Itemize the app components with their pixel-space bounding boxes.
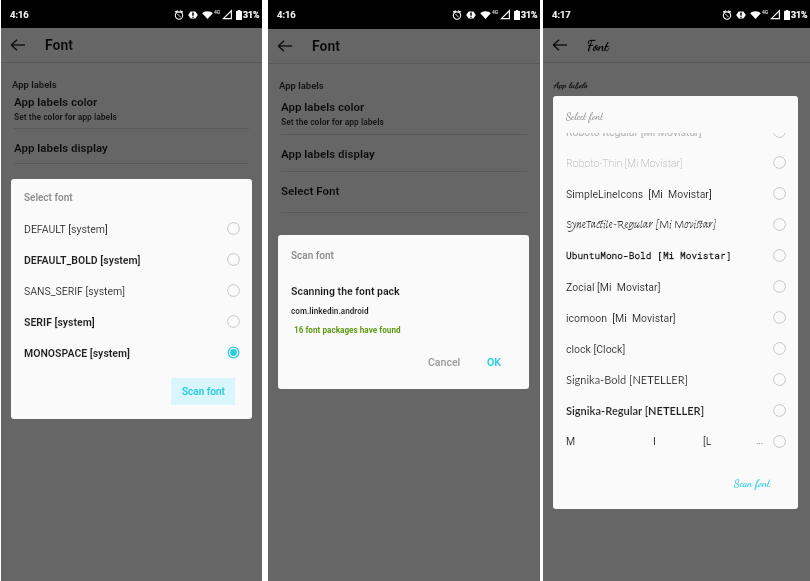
staticText: Set the color for app labels — [281, 117, 384, 127]
staticText: Scanning the font pack — [291, 285, 400, 297]
button[interactable]: SERIF [system] — [11, 306, 252, 337]
button[interactable]: App labels color — [543, 95, 810, 133]
button[interactable]: App labels color — [268, 100, 540, 138]
staticText: M — [566, 435, 576, 447]
staticText: App labels — [279, 80, 324, 91]
staticText: DEFAULT_BOLD [system] — [24, 254, 141, 266]
button[interactable]: DEFAULT [system] — [11, 213, 252, 244]
staticText: Zocial [Mi Movistar] — [566, 281, 661, 293]
staticText: App labels color — [14, 95, 98, 108]
staticText: SERIF [system] — [24, 316, 95, 328]
staticText: com.linkedin.android — [291, 306, 369, 316]
staticText: Select font — [24, 192, 73, 204]
staticText: 31% — [791, 10, 808, 20]
staticText: Select font — [566, 111, 604, 123]
button[interactable]: SimpleLineIcons [Mi Movistar] — [553, 178, 798, 209]
staticText: MONOSPACE [system] — [24, 347, 131, 359]
button[interactable]: App labels display — [1, 129, 262, 166]
button[interactable]: clock [Clock] — [553, 333, 798, 364]
staticText: App labels display — [14, 141, 108, 154]
staticText: OK — [487, 356, 501, 368]
button[interactable]: icomoon [Mi Movistar] — [553, 302, 798, 333]
staticText: Signika-Regular [NETELLER] — [566, 404, 705, 417]
staticText: UbuntuMono-Bold [Mi Movistar] — [566, 249, 732, 262]
staticText: Signika-Bold [NETELLER] — [566, 373, 688, 386]
button[interactable]: M — [553, 426, 798, 456]
staticText: 31% — [243, 10, 260, 20]
button[interactable]: DEFAULT_BOLD [system] — [11, 244, 252, 275]
button[interactable]: SyneTactile-Regular [Mi Movistar] — [553, 209, 798, 240]
button[interactable]: App labels color — [1, 95, 262, 133]
staticText: 4:17 — [552, 9, 571, 20]
staticText: SyneTactile-Regular [Mi Movistar] — [566, 218, 716, 231]
staticText: App labels — [554, 79, 588, 90]
staticText: Set the color for app labels — [556, 113, 637, 123]
staticText: Cancel — [428, 356, 461, 368]
staticText: Font — [45, 37, 74, 53]
staticText: Scan font — [734, 477, 771, 490]
staticText: 4:16 — [277, 9, 296, 20]
button[interactable]: Back — [543, 28, 810, 62]
staticText: Select Font — [281, 184, 340, 197]
button[interactable]: Zocial [Mi Movistar] — [553, 271, 798, 302]
staticText: SimpleLineIcons [Mi Movistar] — [566, 188, 712, 200]
button[interactable]: Select Font — [268, 172, 540, 209]
button[interactable]: Cancel — [419, 345, 470, 379]
button[interactable]: App labels display — [543, 129, 810, 166]
staticText: 4G — [214, 9, 221, 15]
staticText: Font — [587, 37, 609, 54]
button[interactable]: Back — [268, 29, 540, 63]
staticText: Scan font — [291, 250, 334, 262]
staticText: icomoon [Mi Movistar] — [566, 312, 676, 324]
button[interactable]: Back — [1, 28, 262, 62]
staticText: Roboto-Thin [Mi Movistar] — [566, 157, 683, 169]
other: Back — [552, 37, 568, 53]
staticText: App labels color — [281, 100, 365, 113]
staticText: Set the color for app labels — [14, 112, 117, 122]
staticText: App labels — [12, 79, 57, 90]
staticText: 4:16 — [10, 9, 29, 20]
other: Back — [277, 38, 293, 54]
staticText: Font — [312, 38, 341, 54]
staticText: 4G — [492, 9, 499, 15]
staticText: Scan font — [182, 386, 225, 398]
staticText: 31% — [521, 10, 538, 20]
button[interactable]: Scan font — [729, 471, 776, 495]
button[interactable]: MONOSPACE [system] — [11, 337, 252, 368]
staticText: [L — [703, 435, 712, 447]
button[interactable]: Roboto-Thin [Mi Movistar] — [553, 147, 798, 178]
button[interactable]: Roboto-Regular [Mi Movistar] — [553, 133, 798, 147]
button[interactable]: OK — [478, 345, 510, 379]
button[interactable]: Scan font — [171, 378, 235, 405]
staticText: ... — [756, 436, 764, 447]
button[interactable]: Signika-Regular [NETELLER] — [553, 395, 798, 426]
staticText: SANS_SERIF [system] — [24, 285, 126, 297]
button[interactable]: UbuntuMono-Bold [Mi Movistar] — [553, 240, 798, 271]
button[interactable]: Signika-Bold [NETELLER] — [553, 364, 798, 395]
staticText: App labels color — [556, 95, 620, 109]
staticText: App labels display — [281, 147, 375, 160]
button[interactable]: SANS_SERIF [system] — [11, 275, 252, 306]
staticText: I — [653, 435, 656, 447]
button[interactable]: App labels display — [268, 135, 540, 172]
other: Back — [10, 37, 26, 53]
staticText: DEFAULT [system] — [24, 223, 108, 235]
staticText: 16 font packages have found — [294, 325, 401, 335]
staticText: Roboto-Regular [Mi Movistar] — [566, 133, 702, 138]
staticText: clock [Clock] — [566, 343, 626, 355]
staticText: 4G — [762, 9, 769, 15]
